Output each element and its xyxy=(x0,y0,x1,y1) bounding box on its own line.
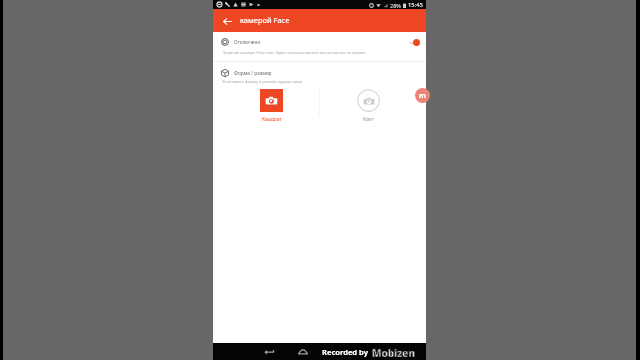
staticText: Квадрат xyxy=(262,116,282,121)
button[interactable]: Recent apps xyxy=(330,345,344,359)
button[interactable]: Home xyxy=(296,345,310,359)
button[interactable]: Circle shape xyxy=(357,89,380,112)
staticText: Форма / размер xyxy=(234,70,272,77)
staticText: Mobizen xyxy=(372,346,415,357)
staticText: Отключено xyxy=(234,39,261,46)
staticText: Задание камеры Face cam. будет использов… xyxy=(223,50,367,55)
staticText: Установите форму и размер кружка лица xyxy=(222,79,303,84)
staticText: m xyxy=(419,91,426,101)
staticText: камерой Face xyxy=(240,15,290,25)
button[interactable]: Toggle xyxy=(409,38,420,47)
staticText: Mobizen xyxy=(372,346,415,357)
button[interactable]: Square shape xyxy=(260,89,283,112)
staticText: 28% xyxy=(390,2,401,9)
button[interactable]: Отключено xyxy=(213,32,426,52)
staticText: 15:45 xyxy=(408,1,423,9)
button[interactable]: Back xyxy=(220,14,234,28)
button[interactable]: Back xyxy=(262,345,276,359)
staticText: Recorded by xyxy=(322,347,368,357)
staticText: Круг xyxy=(363,116,374,121)
